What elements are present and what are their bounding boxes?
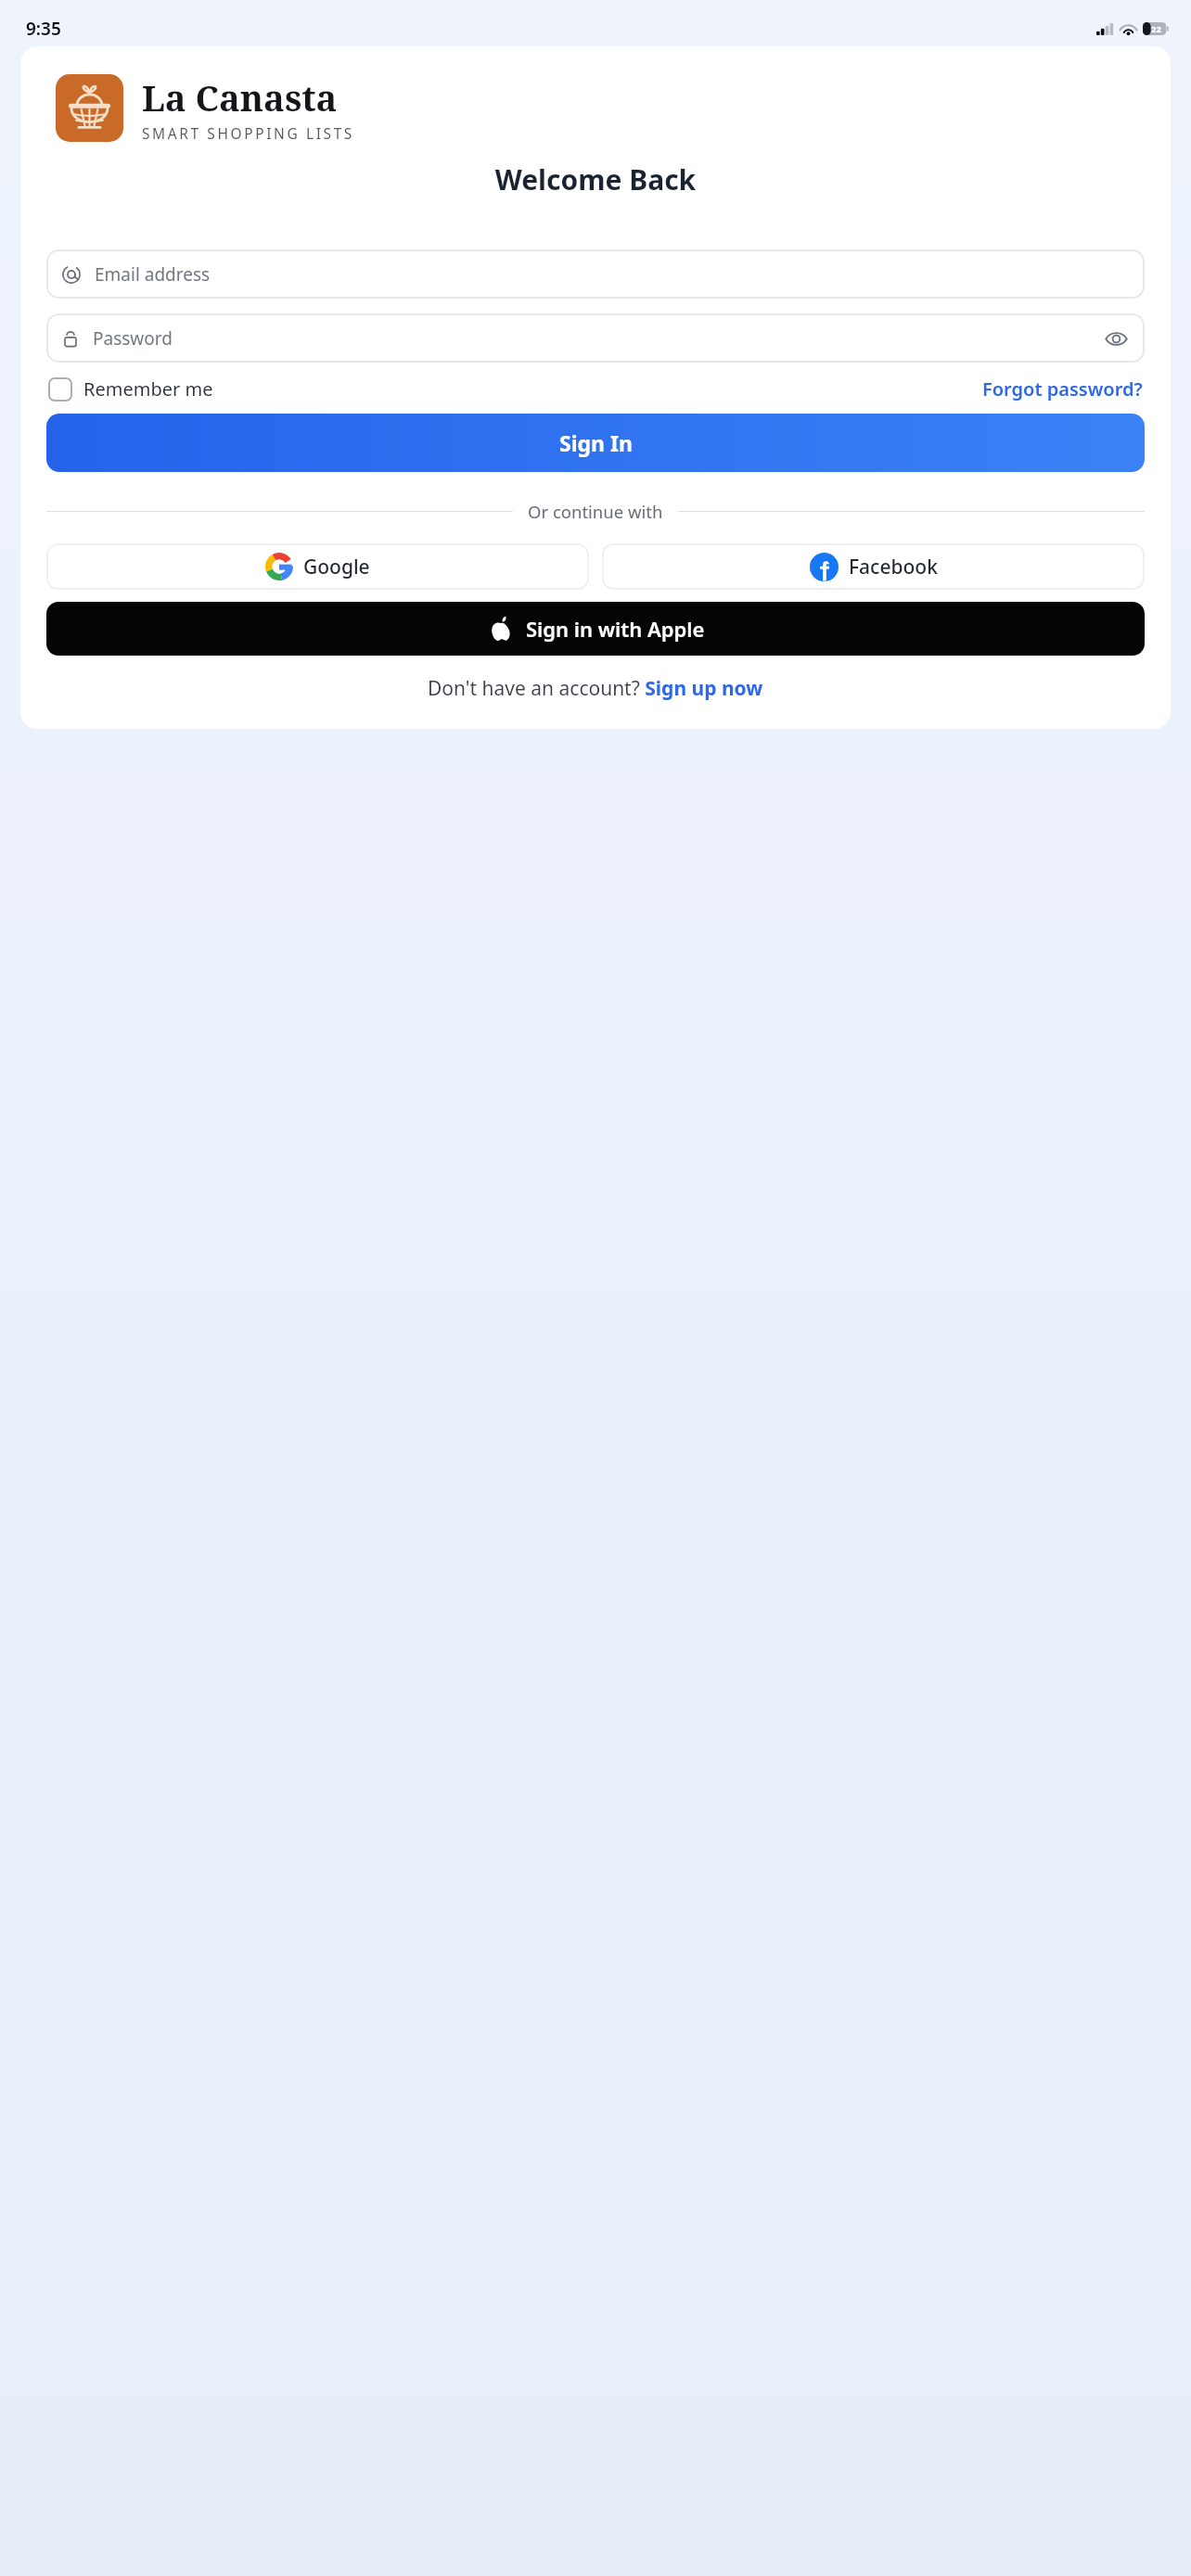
staticText: Password: [93, 326, 1102, 351]
button[interactable]: Email address: [46, 249, 1145, 299]
staticText: 9:35: [26, 17, 61, 41]
staticText: SMART SHOPPING LISTS: [142, 123, 354, 143]
button[interactable]: Sign in with Apple: [46, 602, 1145, 656]
staticText: Facebook: [849, 554, 938, 580]
staticText: Or continue with: [528, 500, 663, 523]
staticText: Don't have an account? Sign up now: [428, 675, 763, 702]
staticText: La Canasta: [142, 73, 338, 121]
button[interactable]: Show password: [1102, 325, 1130, 352]
button[interactable]: Sign In: [46, 414, 1145, 472]
staticText: Forgot password?: [982, 376, 1143, 402]
staticText: Sign in with Apple: [526, 615, 705, 643]
staticText: Google: [303, 554, 370, 580]
button[interactable]: Forgot password?: [982, 376, 1143, 402]
button[interactable]: Remember me: [48, 376, 213, 402]
button[interactable]: Password: [46, 313, 1145, 363]
staticText: Remember me: [83, 376, 213, 402]
staticText: Email address: [95, 262, 1130, 287]
staticText: 22: [1151, 23, 1161, 35]
button[interactable]: Google: [46, 543, 589, 590]
button[interactable]: Facebook: [602, 543, 1145, 590]
staticText: Sign In: [559, 428, 633, 457]
staticText: Welcome Back: [20, 160, 1171, 198]
button[interactable]: Don't have an account? Sign up now: [46, 675, 1145, 702]
